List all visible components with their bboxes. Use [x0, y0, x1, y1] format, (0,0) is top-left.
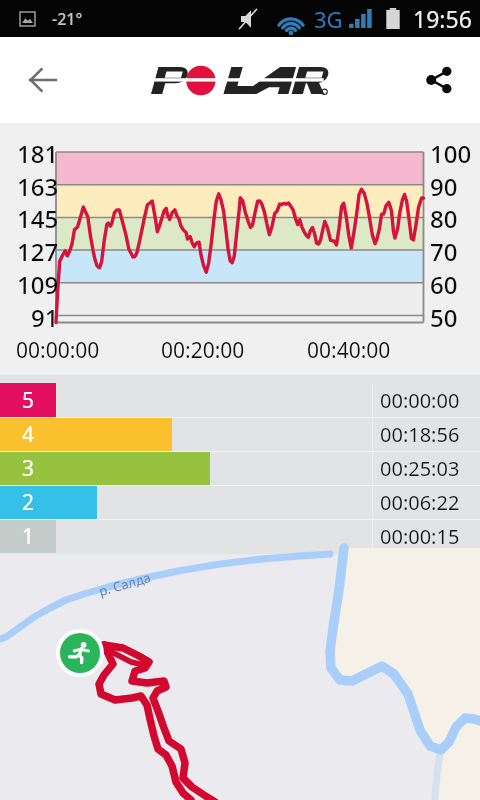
- staticText: 00:20:00: [161, 336, 245, 365]
- staticText: р. Салда: [97, 568, 153, 600]
- staticText: 90: [430, 170, 458, 200]
- staticText: 80: [430, 202, 458, 232]
- staticText: 163: [17, 170, 59, 200]
- staticText: 00:25:03: [380, 455, 460, 482]
- staticText: 127: [17, 235, 59, 265]
- button[interactable]: Back: [18, 55, 68, 105]
- staticText: 145: [17, 202, 59, 232]
- staticText: 60: [430, 268, 458, 298]
- staticText: 91: [31, 301, 59, 331]
- staticText: 00:00:00: [16, 336, 100, 365]
- button[interactable]: 3: [0, 452, 480, 485]
- button[interactable]: 1: [0, 520, 480, 553]
- button[interactable]: 4: [0, 418, 480, 451]
- staticText: 50: [430, 301, 458, 331]
- staticText: 3G: [314, 4, 343, 34]
- staticText: -21°: [52, 8, 83, 30]
- staticText: 2: [22, 488, 35, 517]
- staticText: 00:00:15: [380, 523, 460, 550]
- staticText: 00:06:22: [380, 489, 460, 516]
- staticText: 1: [22, 522, 35, 551]
- staticText: 181: [17, 137, 59, 167]
- button[interactable]: 2: [0, 486, 480, 519]
- staticText: 4: [22, 420, 35, 449]
- button[interactable]: Share: [414, 55, 464, 105]
- staticText: 3: [22, 454, 35, 483]
- button[interactable]: Start point: [60, 633, 100, 673]
- staticText: 109: [17, 268, 59, 298]
- staticText: 00:40:00: [307, 336, 391, 365]
- button[interactable]: 5: [0, 383, 480, 417]
- staticText: 100: [430, 137, 472, 167]
- staticText: 5: [22, 386, 35, 415]
- staticText: 70: [430, 235, 458, 265]
- staticText: 00:18:56: [380, 421, 460, 448]
- staticText: 19:56: [413, 3, 472, 34]
- staticText: 00:00:00: [380, 387, 460, 414]
